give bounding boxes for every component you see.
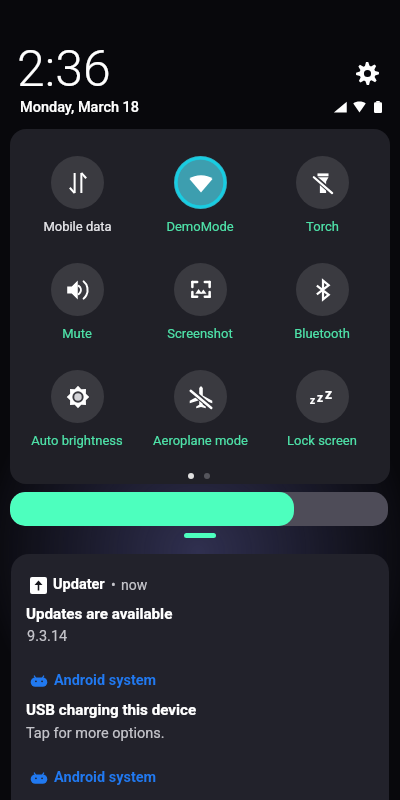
staticText: • <box>111 577 116 593</box>
button[interactable]: Torch <box>262 156 382 234</box>
staticText: Tap for more options. <box>26 725 165 742</box>
staticText: USB charging this device <box>26 701 197 719</box>
staticText: Torch <box>306 219 339 234</box>
staticText: z <box>310 395 316 407</box>
staticText: Screenshot <box>167 326 233 341</box>
staticText: Auto brightness <box>31 433 123 448</box>
staticText: Updater <box>53 576 105 593</box>
staticText: Mute <box>62 326 92 341</box>
staticText: z <box>325 386 333 402</box>
staticText: 9.3.14 <box>27 628 68 645</box>
staticText: Android system <box>54 672 157 689</box>
staticText: Updates are available <box>26 605 173 623</box>
button[interactable]: Mobile data <box>17 156 137 234</box>
button[interactable]: Brightness <box>10 492 388 526</box>
staticText: Bluetooth <box>294 326 350 341</box>
staticText: now <box>121 577 148 593</box>
staticText: Aeroplane mode <box>153 433 248 448</box>
staticText: Mobile data <box>43 219 112 234</box>
button[interactable]: Settings <box>352 58 382 88</box>
button[interactable]: DemoMode <box>140 156 260 234</box>
staticText: Android system <box>54 769 157 786</box>
button[interactable]: Android system <box>11 656 389 758</box>
staticText: Lock screen <box>287 433 357 448</box>
staticText: DemoMode <box>166 219 234 234</box>
button[interactable]: Android system <box>11 758 389 800</box>
staticText: 2:36 <box>17 40 111 99</box>
staticText: z <box>317 391 324 405</box>
button[interactable]: Auto brightness <box>17 370 137 448</box>
button[interactable]: Bluetooth <box>262 263 382 341</box>
button[interactable]: Aeroplane mode <box>140 370 260 448</box>
button[interactable]: Mute <box>17 263 137 341</box>
button[interactable]: Updater <box>11 554 389 656</box>
staticText: Monday, March 18 <box>20 99 140 116</box>
button[interactable]: z <box>262 370 382 448</box>
button[interactable]: Screenshot <box>140 263 260 341</box>
